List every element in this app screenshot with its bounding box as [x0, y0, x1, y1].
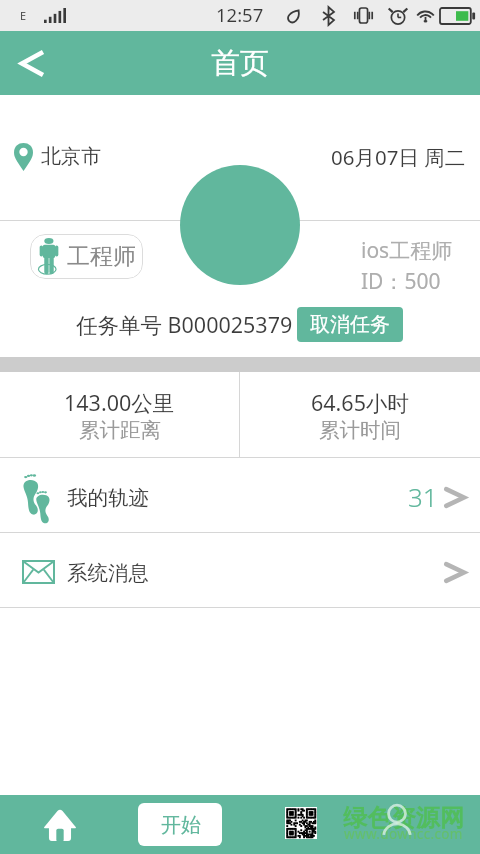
button[interactable]: QR code — [285, 807, 317, 839]
staticText: www.downcc.com — [344, 825, 463, 843]
button[interactable]: 工程师 — [30, 234, 143, 279]
button[interactable]: 我的轨迹 — [0, 458, 480, 532]
staticText: 系统消息 — [67, 560, 149, 586]
staticText: 06月07日 周二 — [331, 143, 466, 171]
button[interactable]: 开始 — [138, 803, 222, 846]
staticText: 取消任务 — [310, 312, 390, 337]
staticText: 累计距离 — [79, 417, 161, 443]
staticText: 143.00公里 — [64, 388, 175, 417]
button[interactable]: 143.00公里 — [0, 372, 239, 457]
staticText: E — [20, 8, 27, 23]
staticText: 我的轨迹 — [67, 485, 149, 511]
staticText: 开始 — [161, 813, 201, 838]
staticText: 任务单号 B000025379 — [76, 310, 293, 339]
button[interactable]: 系统消息 — [0, 533, 480, 607]
button[interactable]: Back — [0, 31, 62, 95]
staticText: 31 — [408, 479, 438, 514]
button[interactable]: Home — [38, 803, 82, 847]
button[interactable]: 取消任务 — [297, 307, 403, 342]
button[interactable]: 64.65小时 — [240, 372, 480, 457]
staticText: ID：500 — [361, 267, 441, 296]
staticText: 首页 — [211, 45, 269, 82]
staticText: 累计时间 — [319, 417, 401, 443]
staticText: 北京市 — [41, 144, 101, 169]
button[interactable]: Avatar — [180, 165, 300, 285]
staticText: 工程师 — [67, 242, 136, 271]
staticText: ios工程师 — [361, 236, 453, 265]
staticText: 绿色资源网 — [343, 803, 464, 833]
staticText: 64.65小时 — [311, 388, 409, 417]
staticText: 12:57 — [216, 2, 264, 27]
